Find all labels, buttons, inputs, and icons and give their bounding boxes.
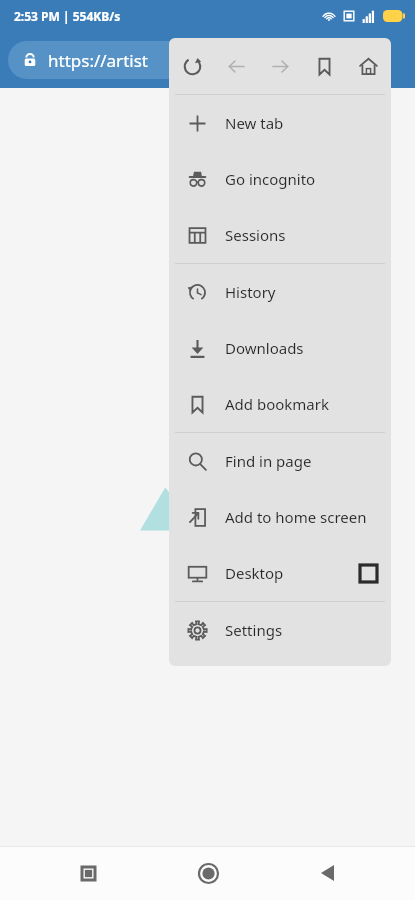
staticText: https://artist [48, 49, 148, 72]
button[interactable]: Back [303, 849, 351, 897]
button[interactable]: Settings [169, 602, 391, 658]
button[interactable]: Add bookmark [169, 376, 391, 432]
button[interactable]: Add to home screen [169, 489, 391, 545]
button[interactable]: Bookmarks [303, 45, 345, 87]
button[interactable]: Go incognito [169, 151, 391, 207]
staticText: Add bookmark [225, 394, 329, 414]
button[interactable]: Recent apps [64, 849, 112, 897]
button[interactable]: Back [215, 45, 257, 87]
staticText: History [225, 282, 276, 302]
staticText: Find in page [225, 451, 312, 471]
staticText: Go incognito [225, 169, 316, 189]
button[interactable]: Home [347, 45, 389, 87]
button[interactable]: Downloads [169, 320, 391, 376]
button[interactable]: Sessions [169, 207, 391, 263]
button[interactable]: Reload [171, 45, 213, 87]
staticText: 2:53 PM | 554KB/s [14, 8, 121, 24]
staticText: Add to home screen [225, 507, 367, 527]
button[interactable]: https://artist [8, 41, 260, 79]
staticText: Downloads [225, 338, 304, 358]
staticText: Desktop [225, 563, 284, 583]
staticText: Settings [225, 620, 283, 640]
button[interactable]: Forward [259, 45, 301, 87]
staticText: New tab [225, 113, 284, 133]
button[interactable]: History [169, 264, 391, 320]
button[interactable]: Home [184, 849, 232, 897]
button[interactable]: Desktop [169, 545, 391, 601]
button[interactable]: New tab [169, 95, 391, 151]
button[interactable]: Find in page [169, 433, 391, 489]
staticText: Sessions [225, 225, 286, 245]
